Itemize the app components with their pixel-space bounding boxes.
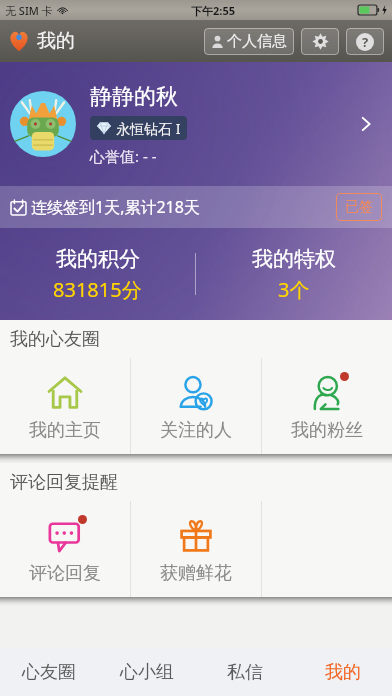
button[interactable]: 关注的人 — [131, 358, 261, 454]
button[interactable]: 连续签到1天,累计218天 — [0, 186, 392, 228]
staticText: 连续签到1天,累计218天 — [31, 196, 200, 218]
button[interactable]: 我的 — [8, 29, 75, 53]
staticText: 已签 — [345, 198, 373, 216]
staticText: 关注的人 — [160, 419, 232, 442]
button[interactable]: 我的主页 — [0, 358, 130, 454]
button[interactable]: 静静的秋 — [0, 62, 392, 320]
staticText: 获赠鲜花 — [160, 562, 232, 585]
button[interactable]: 获赠鲜花 — [131, 501, 261, 597]
button[interactable]: 个人信息 — [204, 28, 294, 55]
button[interactable]: 心小组 — [98, 648, 196, 696]
button[interactable]: 我的粉丝 — [262, 358, 392, 454]
other: More — [350, 108, 382, 140]
staticText: 我的特权 — [252, 246, 336, 272]
staticText: 私信 — [227, 661, 263, 684]
button[interactable]: 评论回复 — [0, 501, 130, 597]
staticText: 我的 — [325, 661, 361, 684]
staticText: 静静的秋 — [90, 83, 178, 111]
staticText: 我的粉丝 — [291, 419, 363, 442]
staticText: 评论回复 — [29, 562, 101, 585]
staticText: 心小组 — [120, 661, 174, 684]
button[interactable]: 我的 — [294, 648, 392, 696]
staticText: 下午2:55 — [191, 3, 235, 18]
button[interactable]: 心友圈 — [0, 648, 98, 696]
button[interactable]: Settings — [301, 28, 339, 55]
button[interactable]: Help — [346, 28, 384, 55]
staticText: 个人信息 — [227, 32, 287, 51]
button[interactable]: 我的特权 — [196, 228, 392, 320]
staticText: 我的心友圈 — [10, 328, 100, 351]
staticText: 永恒钻石 I — [116, 119, 181, 138]
button[interactable]: 私信 — [196, 648, 294, 696]
staticText: 无 SIM 卡 — [5, 3, 53, 18]
staticText: 831815分 — [53, 276, 142, 303]
button[interactable]: 已签 — [336, 193, 382, 221]
staticText: 我的 — [37, 29, 75, 53]
button[interactable]: 我的积分 — [0, 228, 195, 320]
staticText: 心友圈 — [22, 661, 76, 684]
staticText: 心誉值: - - — [90, 146, 157, 166]
staticText: 评论回复提醒 — [10, 471, 118, 494]
staticText: 3个 — [278, 276, 310, 303]
staticText: 我的主页 — [29, 419, 101, 442]
staticText: ? — [362, 33, 369, 51]
staticText: 我的积分 — [56, 246, 140, 272]
